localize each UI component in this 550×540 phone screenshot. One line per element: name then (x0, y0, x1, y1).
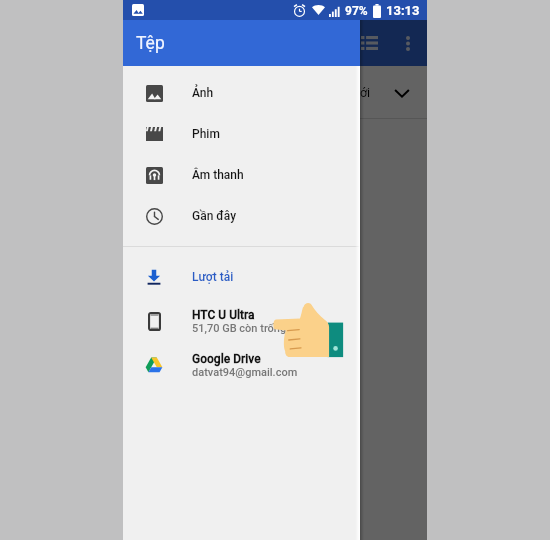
staticText: Tệp (136, 33, 165, 54)
staticText: Âm thanh (192, 168, 244, 182)
button[interactable]: Mới (343, 79, 415, 106)
button[interactable]: Google Drive (123, 343, 360, 387)
staticText: 97% (345, 4, 368, 18)
staticText: 51,70 GB còn trống (192, 322, 287, 335)
button[interactable]: More options (389, 24, 427, 62)
staticText: Gần đây (192, 209, 236, 223)
staticText: 13:13 (386, 3, 420, 18)
button[interactable]: List view (349, 23, 389, 63)
button[interactable]: Lượt tải (123, 256, 360, 297)
button[interactable]: Âm thanh (123, 154, 360, 195)
button[interactable]: Gần đây (123, 195, 360, 236)
button[interactable]: Phim (123, 113, 360, 154)
button[interactable]: Ảnh (123, 72, 360, 113)
staticText: Phim (192, 127, 220, 141)
staticText: Mới (349, 85, 371, 100)
staticText: datvat94@gmail.com (192, 366, 298, 379)
staticText: Lượt tải (192, 270, 234, 284)
staticText: HTC U Ultra (192, 308, 255, 322)
button[interactable]: HTC U Ultra (123, 299, 360, 343)
staticText: Google Drive (192, 352, 261, 366)
staticText: Ảnh (192, 86, 214, 100)
